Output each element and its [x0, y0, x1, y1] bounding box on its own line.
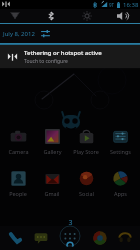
button[interactable]: Settings	[103, 128, 137, 155]
staticText: 9T	[109, 2, 115, 8]
button[interactable]: Social	[69, 170, 103, 197]
button[interactable]: People	[1, 170, 35, 197]
button[interactable]: Music	[117, 230, 133, 246]
staticText: Apps	[114, 190, 127, 197]
button[interactable]: Quick setting	[14, 9, 32, 23]
button[interactable]: Gallery	[35, 128, 69, 155]
button[interactable]: Settings	[40, 28, 51, 39]
button[interactable]: Quick setting	[45, 9, 63, 23]
staticText: Gallery	[43, 148, 62, 155]
button[interactable]: Apps	[103, 170, 137, 197]
staticText: Settings	[110, 148, 131, 155]
button[interactable]: Quick setting	[108, 9, 126, 23]
staticText: 16:38	[123, 1, 139, 9]
button[interactable]: Messaging	[33, 230, 49, 246]
button[interactable]: Browser	[92, 230, 108, 246]
button[interactable]: Phone	[7, 230, 23, 246]
staticText: July 8, 2012	[3, 30, 35, 38]
staticText: Social	[79, 190, 94, 197]
staticText: Tethering or hotspot active	[24, 49, 102, 57]
staticText: 3	[68, 218, 73, 228]
staticText: People	[9, 190, 27, 197]
button[interactable]: Apps	[59, 225, 81, 247]
staticText: Camera	[8, 148, 29, 155]
button[interactable]: Quick setting	[77, 9, 95, 23]
button[interactable]: Tethering or hotspot active	[0, 45, 140, 68]
button[interactable]: Gmail	[35, 170, 69, 197]
button[interactable]: Play Store	[69, 128, 103, 155]
button[interactable]: Camera	[1, 128, 35, 155]
staticText: Gmail	[44, 190, 60, 197]
staticText: Play Store	[73, 148, 99, 155]
staticText: Touch to configure	[24, 58, 68, 65]
